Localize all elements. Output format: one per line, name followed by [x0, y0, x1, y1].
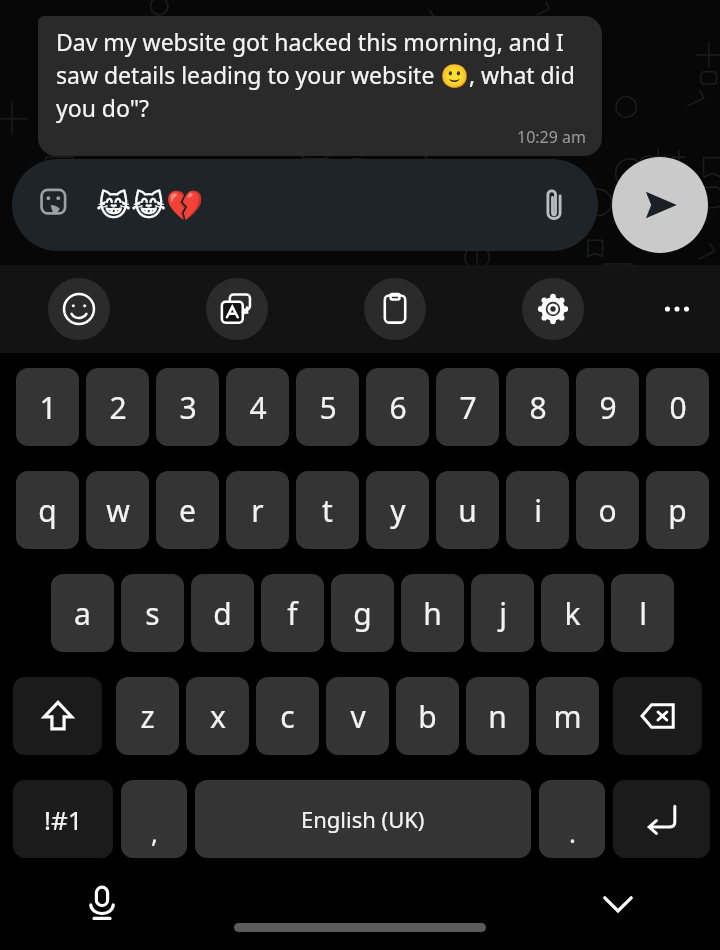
button[interactable]: z [116, 677, 179, 755]
staticText: t [322, 490, 333, 531]
button[interactable]: d [191, 574, 254, 652]
button[interactable]: r [226, 471, 289, 549]
staticText: i [534, 490, 542, 531]
button[interactable]: y [366, 471, 429, 549]
button[interactable]: Shift [13, 677, 102, 755]
staticText: m [553, 696, 582, 737]
button[interactable]: w [86, 471, 149, 549]
button[interactable]: Sticker [34, 183, 78, 227]
button[interactable]: English (UK) [195, 780, 531, 858]
button[interactable]: Settings [522, 278, 584, 340]
button[interactable]: 5 [296, 368, 359, 446]
staticText: 😹😹💔 [96, 188, 204, 223]
staticText: . [569, 815, 576, 850]
button[interactable]: u [436, 471, 499, 549]
button[interactable]: Clipboard [364, 278, 426, 340]
staticText: r [251, 490, 264, 531]
staticText: x [210, 696, 226, 737]
staticText: 3 [179, 387, 197, 428]
button[interactable]: o [576, 471, 639, 549]
staticText: g [353, 593, 372, 634]
staticText: 6 [389, 387, 407, 428]
staticText: w [106, 490, 130, 531]
button[interactable]: k [541, 574, 604, 652]
button[interactable]: t [296, 471, 359, 549]
button[interactable]: Enter [613, 780, 710, 858]
button[interactable]: !#1 [13, 780, 113, 858]
staticText: o [598, 490, 617, 531]
staticText: d [213, 593, 232, 634]
button[interactable]: Send [612, 157, 708, 253]
button[interactable]: Emoji [48, 278, 110, 340]
staticText: f [287, 593, 298, 634]
button[interactable]: h [401, 574, 464, 652]
staticText: 2 [109, 387, 127, 428]
button[interactable]: Dav my website got hacked this morning, … [38, 16, 602, 156]
button[interactable]: Sticker [12, 159, 598, 251]
staticText: a [74, 593, 91, 634]
staticText: j [499, 593, 507, 634]
staticText: p [668, 490, 687, 531]
staticText: 10:29 am [517, 126, 586, 148]
staticText: 0 [669, 387, 687, 428]
button[interactable]: q [16, 471, 79, 549]
button[interactable]: , [121, 780, 187, 858]
button[interactable]: . [539, 780, 605, 858]
staticText: c [280, 696, 295, 737]
button[interactable]: n [466, 677, 529, 755]
button[interactable]: i [506, 471, 569, 549]
staticText: , [151, 815, 158, 850]
staticText: 1 [39, 387, 57, 428]
button[interactable]: 8 [506, 368, 569, 446]
button[interactable]: Backspace [613, 677, 702, 755]
staticText: 4 [249, 387, 267, 428]
button[interactable]: Translate [206, 278, 268, 340]
button[interactable]: c [256, 677, 319, 755]
button[interactable]: 9 [576, 368, 639, 446]
button[interactable]: g [331, 574, 394, 652]
button[interactable]: 7 [436, 368, 499, 446]
button[interactable]: 4 [226, 368, 289, 446]
button[interactable]: 2 [86, 368, 149, 446]
staticText: k [564, 593, 581, 634]
button[interactable]: e [156, 471, 219, 549]
button[interactable]: v [326, 677, 389, 755]
staticText: v [350, 696, 366, 737]
staticText: q [38, 490, 57, 531]
staticText: n [488, 696, 507, 737]
button[interactable]: 1 [16, 368, 79, 446]
button[interactable]: Voice input [72, 874, 132, 934]
staticText: 8 [529, 387, 547, 428]
staticText: b [418, 696, 437, 737]
button[interactable]: Hide keyboard [588, 874, 648, 934]
staticText: u [458, 490, 477, 531]
button[interactable]: m [536, 677, 599, 755]
button[interactable]: b [396, 677, 459, 755]
button[interactable]: f [261, 574, 324, 652]
staticText: 5 [319, 387, 337, 428]
staticText: l [639, 593, 647, 634]
staticText: e [179, 490, 196, 531]
button[interactable]: 6 [366, 368, 429, 446]
staticText: Dav my website got hacked this morning, … [56, 26, 586, 124]
staticText: 9 [599, 387, 617, 428]
button[interactable]: 0 [646, 368, 709, 446]
button[interactable]: x [186, 677, 249, 755]
staticText: !#1 [44, 802, 83, 837]
button[interactable]: More options [646, 278, 708, 340]
staticText: s [145, 593, 160, 634]
button[interactable]: l [611, 574, 674, 652]
staticText: 7 [459, 387, 477, 428]
staticText: y [390, 490, 406, 531]
button[interactable]: 3 [156, 368, 219, 446]
button[interactable]: Attach [532, 183, 576, 227]
staticText: English (UK) [301, 804, 425, 834]
staticText: z [140, 696, 155, 737]
button[interactable]: j [471, 574, 534, 652]
button[interactable]: p [646, 471, 709, 549]
button[interactable]: s [121, 574, 184, 652]
staticText: h [423, 593, 442, 634]
button[interactable]: a [51, 574, 114, 652]
